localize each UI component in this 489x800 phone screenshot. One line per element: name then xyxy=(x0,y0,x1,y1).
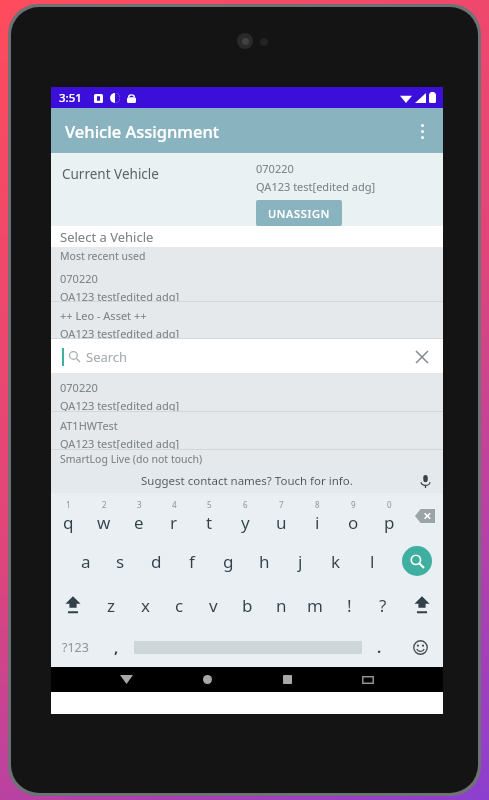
staticText: Search xyxy=(86,348,128,366)
staticText: ! xyxy=(347,594,352,617)
staticText: 3:51 xyxy=(59,90,82,106)
staticText: ?123 xyxy=(62,639,89,656)
staticText: 5 xyxy=(207,499,212,510)
staticText: n xyxy=(276,594,287,617)
button[interactable]: k xyxy=(318,539,354,583)
staticText: QA123 test[edited adg] xyxy=(60,436,180,449)
button[interactable]: d xyxy=(138,539,174,583)
staticText: 8 xyxy=(315,499,320,510)
staticText: o xyxy=(348,511,359,534)
button[interactable]: b xyxy=(230,583,264,627)
staticText: QA123 test[edited adg] xyxy=(60,326,180,338)
button[interactable]: Home xyxy=(192,667,222,692)
staticText: 070220 xyxy=(60,380,98,395)
staticText: Current Vehicle xyxy=(62,165,159,183)
button[interactable]: ! xyxy=(332,583,366,627)
button[interactable]: Search xyxy=(390,539,443,583)
staticText: c xyxy=(175,594,184,617)
staticText: 0 xyxy=(387,499,392,510)
button[interactable]: Recents xyxy=(272,667,302,692)
staticText: i xyxy=(315,511,320,534)
staticText: 9 xyxy=(351,499,356,510)
staticText: g xyxy=(223,550,234,573)
button[interactable]: 4 xyxy=(156,493,191,539)
staticText: j xyxy=(298,550,303,573)
button[interactable]: z xyxy=(94,583,128,627)
staticText: Most recent used xyxy=(60,249,146,263)
staticText: QA123 test[edited adg] xyxy=(256,179,376,194)
button[interactable]: c xyxy=(162,583,196,627)
button[interactable]: Backspace xyxy=(407,493,443,539)
button[interactable]: 7 xyxy=(263,493,299,539)
button[interactable]: 070220 xyxy=(51,265,443,301)
button[interactable]: AT1HWTest xyxy=(51,412,443,449)
staticText: QA123 test[edited adg] xyxy=(60,398,180,411)
staticText: 4 xyxy=(172,499,177,510)
button[interactable]: 9 xyxy=(335,493,371,539)
button[interactable]: 6 xyxy=(227,493,263,539)
button[interactable]: n xyxy=(264,583,298,627)
staticText: Suggest contact names? Touch for info. xyxy=(141,473,353,489)
staticText: , xyxy=(114,637,119,657)
button[interactable]: x xyxy=(128,583,162,627)
staticText: e xyxy=(134,511,144,534)
staticText: w xyxy=(97,511,111,534)
staticText: Select a Vehicle xyxy=(60,228,154,246)
staticText: d xyxy=(151,550,162,573)
button[interactable]: Shift xyxy=(400,583,443,627)
staticText: p xyxy=(384,511,395,534)
staticText: q xyxy=(63,511,74,534)
staticText: UNASSIGN xyxy=(268,206,330,220)
staticText: r xyxy=(170,511,178,534)
button[interactable]: Emoji xyxy=(397,627,443,667)
staticText: 070220 xyxy=(256,161,294,176)
button[interactable]: 5 xyxy=(191,493,227,539)
button[interactable]: 3 xyxy=(121,493,156,539)
staticText: 070220 xyxy=(60,271,98,286)
button[interactable]: 2 xyxy=(86,493,121,539)
staticText: t xyxy=(206,511,213,534)
staticText: k xyxy=(331,550,341,573)
button[interactable]: Back xyxy=(111,667,141,692)
button[interactable]: 8 xyxy=(299,493,335,539)
button[interactable]: h xyxy=(246,539,282,583)
staticText: v xyxy=(209,594,218,617)
staticText: 1 xyxy=(66,499,71,510)
staticText: ++ Leo - Asset ++ xyxy=(60,308,147,323)
staticText: s xyxy=(116,550,125,573)
staticText: b xyxy=(242,594,253,617)
button[interactable]: v xyxy=(196,583,230,627)
button[interactable]: ? xyxy=(366,583,400,627)
button[interactable]: Space xyxy=(134,627,362,667)
button[interactable]: m xyxy=(298,583,332,627)
button[interactable]: g xyxy=(210,539,246,583)
staticText: 7 xyxy=(279,499,284,510)
staticText: h xyxy=(259,550,270,573)
button[interactable]: Keyboard xyxy=(353,667,383,692)
button[interactable]: Shift xyxy=(51,583,94,627)
button[interactable]: More options xyxy=(401,110,443,152)
staticText: 6 xyxy=(243,499,248,510)
button[interactable]: j xyxy=(282,539,318,583)
button[interactable]: . xyxy=(362,627,397,667)
button[interactable]: ?123 xyxy=(51,627,99,667)
button[interactable]: ++ Leo - Asset ++ xyxy=(51,302,443,338)
staticText: 2 xyxy=(102,499,107,510)
button[interactable]: f xyxy=(174,539,210,583)
button[interactable]: a xyxy=(68,539,103,583)
button[interactable]: l xyxy=(354,539,390,583)
staticText: l xyxy=(370,550,375,573)
button[interactable]: 0 xyxy=(371,493,407,539)
button[interactable]: , xyxy=(99,627,134,667)
button[interactable]: 1 xyxy=(51,493,86,539)
button[interactable]: Voice input xyxy=(415,471,435,491)
staticText: x xyxy=(141,594,150,617)
staticText: AT1HWTest xyxy=(60,418,118,433)
button[interactable]: UNASSIGN xyxy=(256,200,342,226)
staticText: 3 xyxy=(137,499,142,510)
button[interactable]: s xyxy=(103,539,138,583)
staticText: u xyxy=(276,511,287,534)
staticText: m xyxy=(307,594,323,617)
button[interactable]: 070220 xyxy=(51,374,443,411)
button[interactable]: Clear search xyxy=(411,346,433,368)
